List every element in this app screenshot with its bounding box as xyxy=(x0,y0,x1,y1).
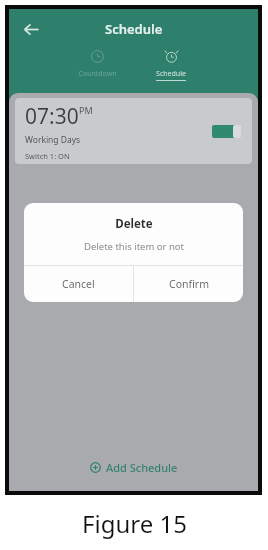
staticText: 07:30 xyxy=(25,102,79,131)
staticText: Countdown xyxy=(78,69,117,79)
button[interactable]: Schedule tab xyxy=(142,49,200,81)
staticText: Confirm xyxy=(169,277,209,291)
button[interactable]: Add Schedule xyxy=(90,460,178,475)
button[interactable]: Countdown tab xyxy=(68,49,126,79)
staticText: PM xyxy=(79,104,93,116)
staticText: Delete xyxy=(115,216,153,232)
staticText: Switch 1: ON xyxy=(25,151,70,161)
staticText: Figure 15 xyxy=(82,507,187,540)
staticText: Delete this item or not xyxy=(84,240,184,253)
button[interactable]: 07:30 xyxy=(15,98,252,164)
staticText: Working Days xyxy=(25,134,81,146)
staticText: Add Schedule xyxy=(106,460,178,475)
staticText: Cancel xyxy=(62,277,95,291)
button[interactable]: Back xyxy=(17,15,45,43)
staticText: Schedule xyxy=(156,69,186,79)
button[interactable]: Cancel xyxy=(24,266,133,302)
button[interactable]: Confirm xyxy=(134,266,243,302)
button[interactable]: Enable schedule xyxy=(212,124,242,139)
staticText: Schedule xyxy=(105,20,163,38)
